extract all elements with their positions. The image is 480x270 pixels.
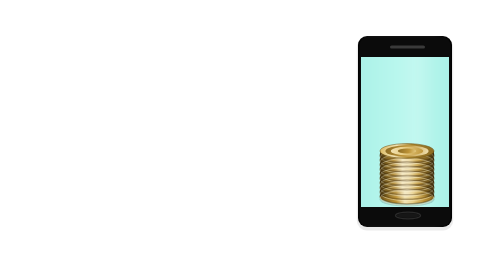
button[interactable]: Smartphone showing a stack of gold coins	[0, 0, 480, 270]
